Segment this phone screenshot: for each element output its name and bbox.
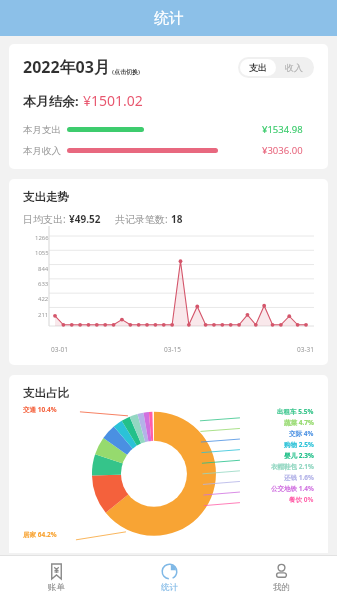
other: 账单 [48,563,65,580]
button[interactable]: 2022年03月 [23,56,238,78]
staticText: 统计 [154,9,184,28]
staticText: 211 [38,311,49,319]
staticText: 支出走势 [23,190,69,204]
staticText: 出租车 5.5% [277,407,314,416]
staticText: 婴儿 2.3% [284,451,314,460]
staticText: 844 [38,265,49,273]
staticText: 2022年03月 [23,56,110,78]
staticText: 支出 [249,62,267,73]
staticText: 本月结余: [23,92,83,110]
staticText: 购物 2.5% [284,440,314,449]
staticText: 1055 [35,249,49,257]
staticText: 蔬菜 4.7% [284,418,314,427]
staticText: 餐饮 0% [289,495,314,504]
staticText: 支出占比 [23,386,69,400]
staticText: 我的 [273,582,290,593]
staticText: 03-31 [297,345,314,354]
staticText: 收入 [285,62,303,73]
button[interactable]: 账单 [0,556,113,600]
staticText: 03-01 [51,345,68,354]
staticText: 422 [38,295,49,303]
staticText: 交际 4% [289,429,314,438]
staticText: ¥49.52 [69,212,101,226]
staticText: 03-15 [164,345,181,354]
other: 统计 [161,563,178,580]
staticText: 居家 64.2% [23,530,57,539]
button[interactable]: 我的 [225,556,337,600]
staticText: 18 [171,212,183,226]
staticText: (点击切换) [112,68,141,76]
staticText: 统计 [161,582,178,593]
staticText: 公交地铁 1.4% [271,484,314,493]
button[interactable]: 统计 [113,556,225,600]
staticText: 交通 10.4% [23,405,57,414]
staticText: 日均支出: [23,212,69,226]
staticText: 还钱 1.6% [284,473,314,482]
staticText: 本月收入 [23,145,61,157]
staticText: 衣帽鞋包 2.1% [271,462,314,471]
staticText: 本月支出 [23,124,61,136]
other: 我的 [273,563,290,580]
button[interactable]: 支出 [240,59,276,76]
staticText: 共记录笔数: [115,212,171,226]
staticText: 633 [38,280,49,288]
staticText: 1266 [35,234,49,242]
staticText: ¥1534.98 [262,123,314,136]
staticText: ¥1501.02 [83,91,143,110]
staticText: ¥3036.00 [262,144,314,157]
button[interactable]: 收入 [276,59,312,76]
staticText: 账单 [48,582,65,593]
